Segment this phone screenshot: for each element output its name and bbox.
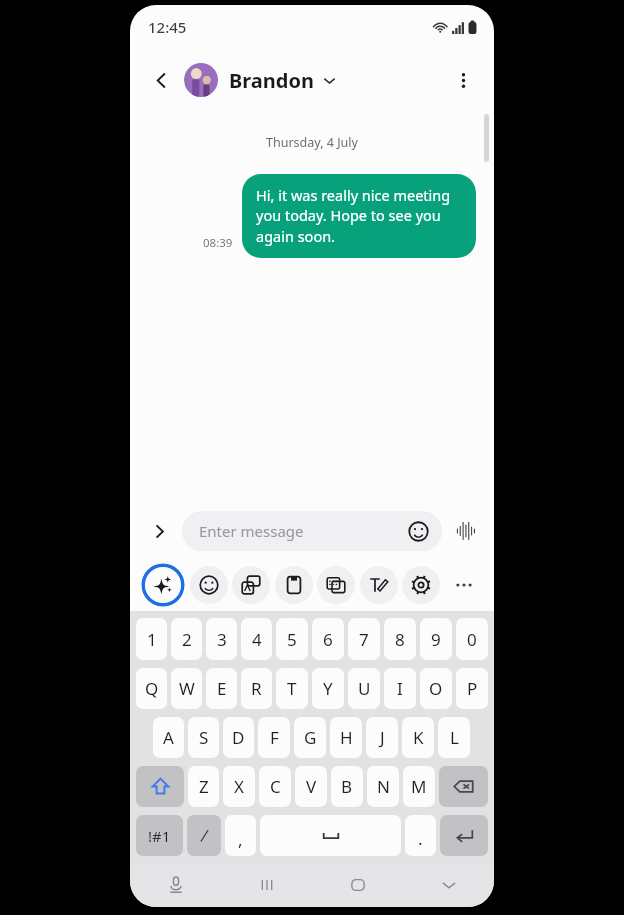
button[interactable]: 5 [276, 618, 308, 660]
button[interactable]: Keyboard modes [317, 566, 355, 604]
button[interactable]: 7 [348, 618, 380, 660]
button[interactable]: 3 [206, 618, 237, 660]
button[interactable]: F [258, 717, 290, 758]
button[interactable]: J [366, 717, 398, 758]
staticText: D [232, 726, 245, 749]
staticText: S [199, 726, 209, 749]
button[interactable]: B [331, 766, 363, 807]
staticText: 7 [359, 628, 369, 651]
staticText: Hi, it was really nice meeting you today… [256, 185, 462, 247]
staticText: !#1 [148, 826, 171, 846]
staticText: 1 [147, 628, 157, 651]
button[interactable]: C [259, 766, 291, 807]
button[interactable]: Shift [136, 766, 184, 807]
staticText: I [397, 677, 403, 700]
button[interactable]: G [294, 717, 326, 758]
staticText: H [340, 726, 353, 749]
button[interactable]: 8 [384, 618, 416, 660]
staticText: B [341, 775, 353, 798]
button[interactable]: W [171, 668, 202, 709]
button[interactable]: Backspace [439, 766, 488, 807]
button[interactable]: Z [188, 766, 219, 807]
button[interactable]: Q [136, 668, 167, 709]
staticText: L [450, 726, 459, 749]
button[interactable]: More options [445, 62, 481, 98]
button[interactable]: E [206, 668, 237, 709]
button[interactable]: K [402, 717, 434, 758]
button[interactable]: P [456, 668, 488, 709]
button[interactable]: X [223, 766, 255, 807]
button[interactable]: Home [312, 863, 403, 907]
button[interactable]: Translate [232, 566, 270, 604]
button[interactable]: Hi, it was really nice meeting you today… [242, 174, 476, 258]
staticText: 08:39 [203, 235, 233, 251]
button[interactable]: Brandon [184, 59, 336, 101]
button[interactable]: Settings [402, 566, 440, 604]
button[interactable]: A [153, 717, 184, 758]
button[interactable]: AI assist [141, 563, 185, 607]
button[interactable]: L [438, 717, 470, 758]
button[interactable]: N [367, 766, 399, 807]
button[interactable]: Stickers [190, 566, 228, 604]
button[interactable]: Language [187, 815, 221, 856]
staticText: K [413, 726, 424, 749]
staticText: N [377, 775, 390, 798]
staticText: X [234, 775, 244, 798]
staticText: F [270, 726, 279, 749]
button[interactable]: Y [312, 668, 344, 709]
button[interactable]: Handwriting [360, 566, 398, 604]
button[interactable]: Enter message [182, 511, 442, 551]
staticText: T [287, 677, 297, 700]
button[interactable]: H [330, 717, 362, 758]
button[interactable]: Hide keyboard [403, 863, 494, 907]
staticText: . [418, 827, 423, 850]
button[interactable]: V [295, 766, 327, 807]
staticText: Q [145, 677, 159, 700]
button[interactable]: Enter [440, 815, 488, 856]
staticText: P [467, 677, 478, 700]
staticText: 3 [217, 628, 227, 651]
staticText: Z [199, 775, 209, 798]
button[interactable]: 0 [456, 618, 488, 660]
button[interactable]: S [188, 717, 219, 758]
button[interactable]: 4 [241, 618, 272, 660]
staticText: , [238, 828, 243, 851]
button[interactable]: 2 [171, 618, 202, 660]
button[interactable]: T [276, 668, 308, 709]
staticText: 12:45 [148, 17, 187, 37]
staticText: U [358, 677, 371, 700]
staticText: A [163, 726, 174, 749]
staticText: Thursday, 4 July [266, 134, 358, 151]
staticText: Y [323, 677, 333, 700]
button[interactable]: Voice [130, 863, 221, 907]
staticText: 8 [395, 628, 405, 651]
button[interactable]: M [403, 766, 435, 807]
staticText: J [380, 726, 385, 749]
button[interactable]: D [223, 717, 254, 758]
staticText: E [217, 677, 227, 700]
button[interactable]: Show apps [144, 516, 174, 546]
staticText: G [304, 726, 317, 749]
button[interactable]: Space [260, 815, 401, 856]
staticText: 4 [252, 628, 262, 651]
button[interactable]: 6 [312, 618, 344, 660]
staticText: M [411, 775, 427, 798]
button[interactable]: Voice message [452, 517, 480, 545]
staticText: 9 [431, 628, 441, 651]
button[interactable]: Back [143, 62, 179, 98]
button[interactable]: O [420, 668, 452, 709]
button[interactable]: More [445, 566, 483, 604]
button[interactable]: U [348, 668, 380, 709]
staticText: O [429, 677, 443, 700]
button[interactable]: 9 [420, 618, 452, 660]
staticText: Brandon [229, 67, 314, 94]
staticText: V [306, 775, 317, 798]
button[interactable]: 1 [136, 618, 167, 660]
button[interactable]: . [405, 815, 436, 856]
button[interactable]: !#1 [136, 815, 183, 856]
button[interactable]: , [225, 815, 256, 856]
button[interactable]: Clipboard [275, 566, 313, 604]
button[interactable]: R [241, 668, 272, 709]
button[interactable]: I [384, 668, 416, 709]
button[interactable]: Recents [221, 863, 312, 907]
